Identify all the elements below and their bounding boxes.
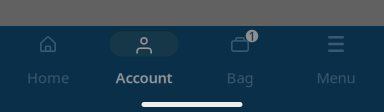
staticText: Bag bbox=[226, 68, 253, 87]
button[interactable]: Home bbox=[0, 26, 96, 112]
staticText: Home bbox=[27, 68, 69, 87]
staticText: 1 bbox=[248, 28, 255, 44]
button[interactable]: Bag bbox=[192, 26, 288, 112]
button[interactable]: Account bbox=[96, 26, 192, 112]
staticText: Menu bbox=[316, 68, 355, 87]
button[interactable]: Menu bbox=[288, 26, 384, 112]
staticText: Account bbox=[115, 68, 172, 87]
